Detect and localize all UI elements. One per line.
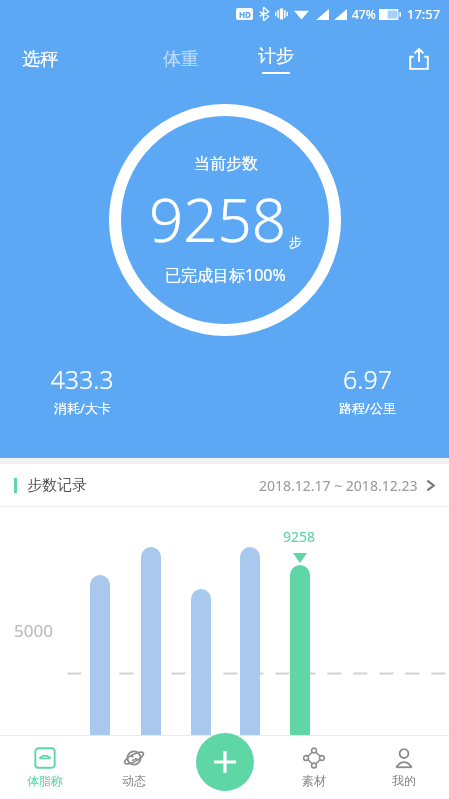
staticText: 体重 <box>163 48 199 71</box>
staticText: 433.3 <box>50 362 114 396</box>
staticText: 路程/公里 <box>339 399 396 417</box>
staticText: 计步 <box>258 45 294 68</box>
staticText: 17:57 <box>407 5 441 23</box>
button[interactable]: Share <box>403 43 435 75</box>
button[interactable]: 我的 <box>359 735 449 799</box>
staticText: 体脂称 <box>27 773 63 788</box>
staticText: 步 <box>289 234 302 250</box>
staticText: 6.97 <box>343 362 392 396</box>
staticText: 9258 <box>149 178 287 260</box>
staticText: 消耗/大卡 <box>54 399 111 417</box>
button[interactable]: 433.3 <box>20 362 144 417</box>
staticText: 步数记录 <box>27 476 87 495</box>
staticText: 当前步数 <box>194 154 258 174</box>
staticText: 5000 <box>14 619 53 642</box>
button[interactable]: 6.97 <box>305 362 429 417</box>
staticText: HD <box>239 9 251 20</box>
button[interactable]: 选秤 <box>14 42 66 77</box>
staticText: 选秤 <box>22 48 58 71</box>
staticText: 9258 <box>283 527 316 546</box>
staticText: 我的 <box>392 773 416 788</box>
button[interactable]: Add <box>196 733 254 791</box>
button[interactable]: 计步 <box>258 45 294 74</box>
button[interactable]: 动态 <box>89 735 179 799</box>
button[interactable]: 体重 <box>155 42 207 77</box>
button[interactable]: 步数记录 <box>0 464 449 506</box>
button[interactable]: 体脂称 <box>0 735 89 799</box>
button[interactable]: 素材 <box>269 735 359 799</box>
staticText: 47% <box>352 6 376 22</box>
staticText: 素材 <box>302 773 326 788</box>
staticText: 2018.12.17 ~ 2018.12.23 <box>259 476 418 495</box>
staticText: 已完成目标100% <box>165 264 286 286</box>
staticText: 动态 <box>122 773 146 788</box>
